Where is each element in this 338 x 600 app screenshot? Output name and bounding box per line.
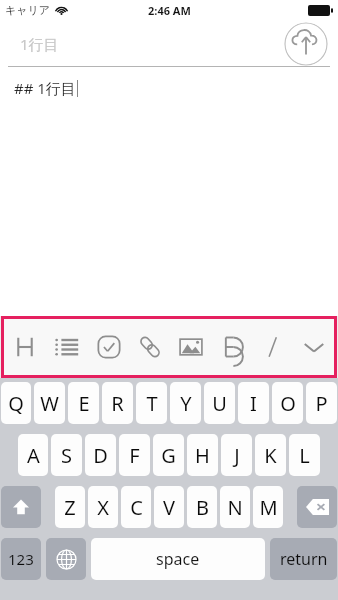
button[interactable]: T — [136, 382, 167, 424]
staticText: A — [27, 442, 40, 469]
staticText: L — [299, 442, 310, 469]
staticText: キャリア — [5, 3, 51, 17]
staticText: G — [161, 442, 176, 469]
staticText: ## 1行目 — [14, 78, 76, 98]
button[interactable]: Bulleted list — [46, 319, 88, 375]
staticText: H — [195, 442, 210, 469]
staticText: 2:46 AM — [148, 3, 191, 18]
button[interactable]: Link — [129, 319, 170, 375]
button[interactable]: H — [187, 434, 218, 476]
button[interactable]: return — [270, 538, 337, 580]
button[interactable]: Heading — [4, 319, 46, 375]
button[interactable]: Q — [1, 382, 31, 424]
button[interactable]: space — [91, 538, 265, 580]
button[interactable]: Shift — [1, 486, 41, 528]
button[interactable]: S — [51, 434, 82, 476]
staticText: B — [196, 494, 209, 521]
button[interactable]: C — [121, 486, 151, 528]
button[interactable]: W — [34, 382, 65, 424]
button[interactable]: B — [187, 486, 217, 528]
button[interactable]: M — [253, 486, 283, 528]
staticText: W — [40, 390, 59, 417]
staticText: J — [234, 442, 240, 469]
button[interactable]: Checklist — [88, 319, 129, 375]
staticText: F — [129, 442, 140, 469]
staticText: S — [61, 442, 72, 469]
button[interactable]: A — [18, 434, 48, 476]
staticText: Q — [8, 390, 24, 417]
staticText: Z — [64, 494, 76, 521]
button[interactable]: Delete — [297, 486, 337, 528]
button[interactable]: J — [221, 434, 252, 476]
staticText: C — [130, 494, 143, 521]
button[interactable]: I — [238, 382, 269, 424]
staticText: 1行目 — [20, 34, 59, 54]
button[interactable]: N — [220, 486, 250, 528]
button[interactable]: Change keyboard — [46, 538, 86, 580]
button[interactable]: Upload to cloud — [284, 22, 328, 66]
staticText: R — [111, 390, 124, 417]
button[interactable]: Z — [55, 486, 85, 528]
staticText: E — [78, 390, 90, 417]
button[interactable]: Y — [170, 382, 201, 424]
staticText: M — [259, 494, 278, 521]
staticText: return — [280, 548, 328, 570]
button[interactable]: V — [154, 486, 184, 528]
button[interactable]: R — [102, 382, 133, 424]
staticText: I — [250, 390, 257, 417]
staticText: X — [97, 494, 109, 521]
button[interactable]: Insert image — [170, 319, 211, 375]
button[interactable]: K — [255, 434, 286, 476]
staticText: N — [227, 494, 243, 521]
button[interactable]: Hide keyboard — [293, 319, 334, 375]
staticText: D — [93, 442, 108, 469]
staticText: 123 — [8, 549, 34, 569]
staticText: V — [163, 494, 175, 521]
button[interactable]: O — [272, 382, 303, 424]
button[interactable]: U — [204, 382, 235, 424]
staticText: space — [156, 548, 200, 570]
button[interactable]: X — [88, 486, 118, 528]
button[interactable]: E — [68, 382, 99, 424]
button[interactable]: L — [289, 434, 320, 476]
staticText: Y — [180, 390, 192, 417]
button[interactable]: Italic — [252, 319, 293, 375]
staticText: P — [315, 390, 328, 417]
button[interactable]: Bold — [211, 319, 252, 375]
button[interactable]: 123 — [1, 538, 41, 580]
button[interactable]: P — [306, 382, 337, 424]
staticText: O — [280, 390, 296, 417]
staticText: U — [212, 390, 227, 417]
button[interactable]: G — [153, 434, 184, 476]
button[interactable]: F — [119, 434, 150, 476]
staticText: K — [264, 442, 277, 469]
button[interactable]: D — [85, 434, 116, 476]
staticText: T — [146, 390, 158, 417]
